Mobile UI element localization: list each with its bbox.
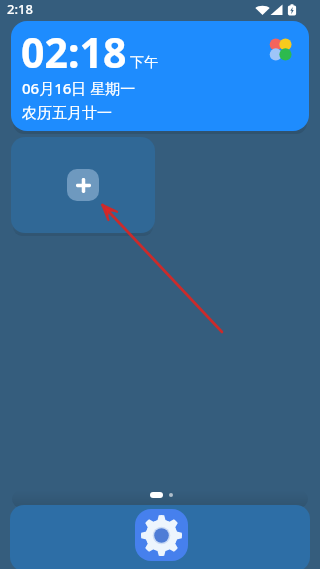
staticText: 06月16日 星期一 <box>22 78 136 98</box>
button[interactable]: 02:18 <box>11 21 309 131</box>
button[interactable]: Calendar app <box>269 38 292 61</box>
staticText: 下午 <box>130 54 158 72</box>
button[interactable]: Add widget <box>11 137 155 233</box>
staticText: 02:18 <box>21 24 127 80</box>
staticText: 2:18 <box>7 0 33 18</box>
button[interactable]: Settings <box>135 509 188 561</box>
staticText: 农历五月廿一 <box>22 104 112 123</box>
